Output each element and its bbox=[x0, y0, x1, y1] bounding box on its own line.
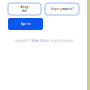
staticText: Sign in bbox=[20, 22, 30, 26]
staticText: Keep bbox=[20, 5, 28, 9]
staticText: Acme Studio bbox=[32, 39, 49, 42]
staticText: Copyright © bbox=[14, 39, 32, 42]
button[interactable]: Keep bbox=[8, 3, 41, 15]
staticText: . Rights reserved bbox=[49, 39, 73, 42]
button[interactable]: Forgot password? bbox=[45, 3, 79, 15]
staticText: me bbox=[22, 9, 27, 12]
button[interactable]: Sign in bbox=[8, 18, 43, 30]
staticText: Forgot password? bbox=[50, 7, 73, 11]
button[interactable]: Acme Studio bbox=[32, 39, 49, 42]
